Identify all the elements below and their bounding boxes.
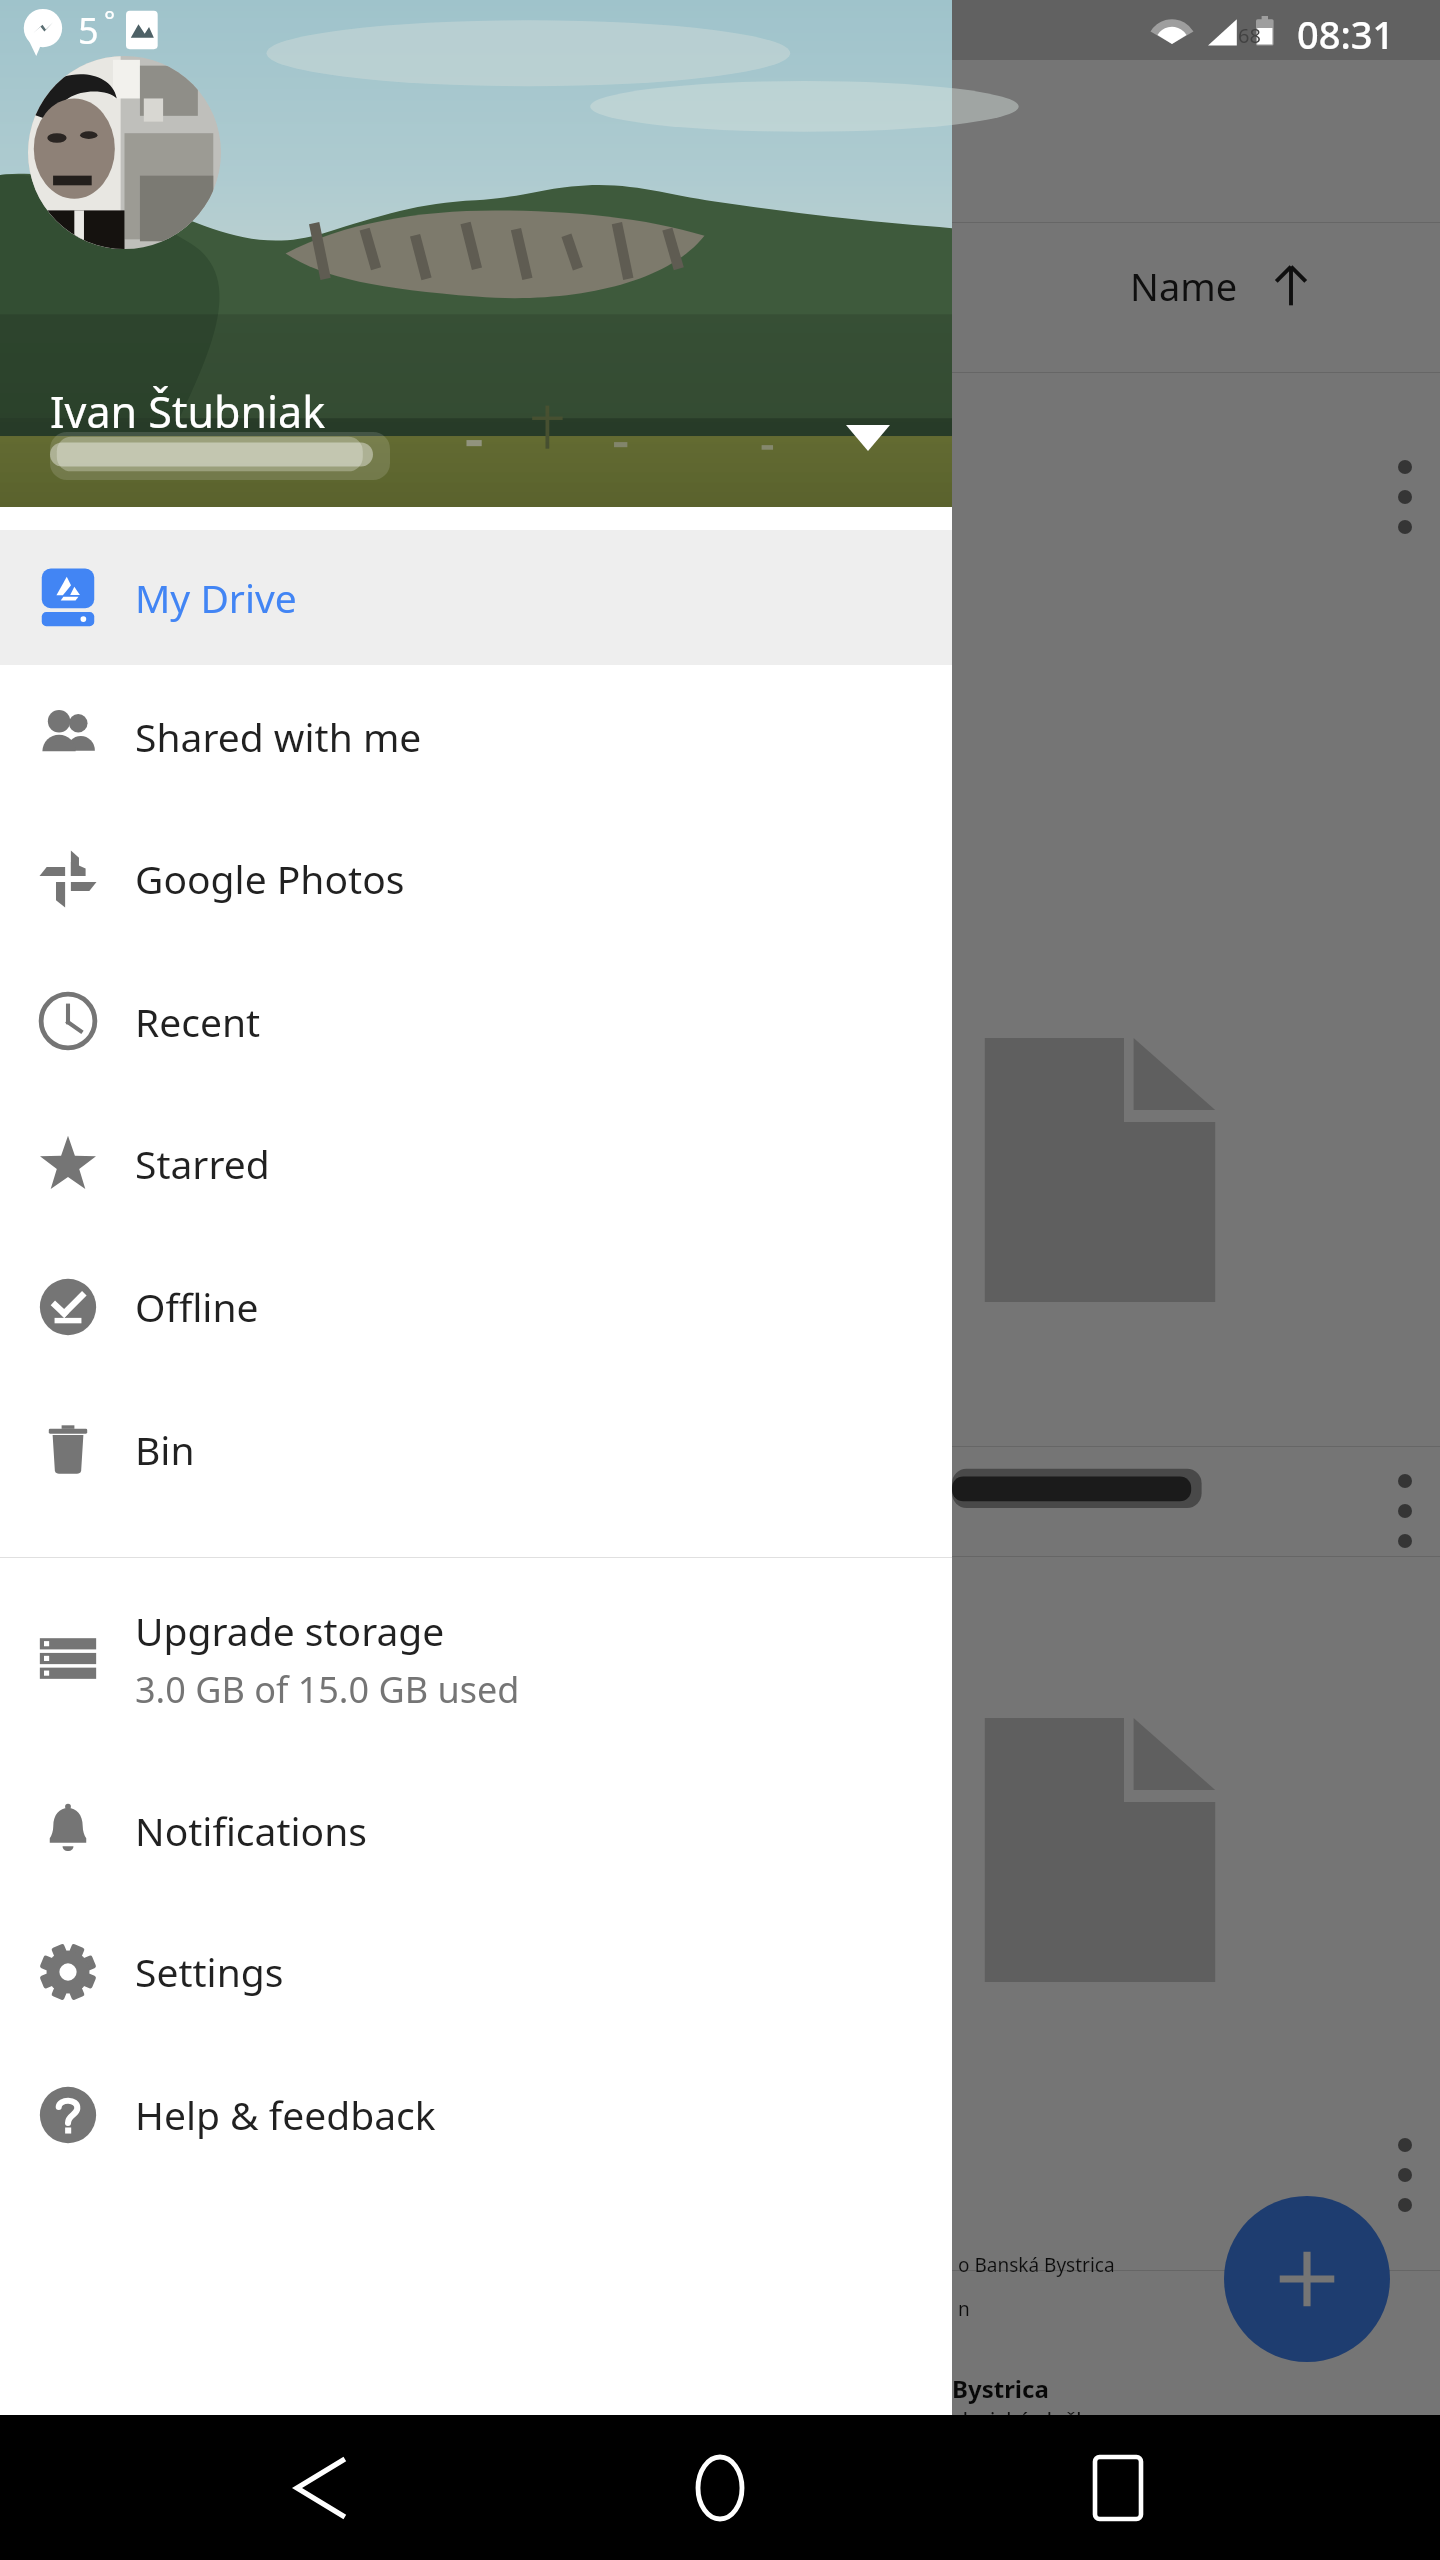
button[interactable]: Google Photos	[0, 807, 952, 950]
button[interactable]: Upgrade storage	[0, 1558, 952, 1760]
button[interactable]: Account photo	[0, 0, 952, 507]
staticText: Google Photos	[135, 852, 405, 905]
staticText: Name	[1130, 260, 1238, 312]
staticText: Settings	[135, 1945, 284, 1998]
button[interactable]: Show accounts	[820, 390, 916, 486]
staticText: °	[104, 2, 116, 37]
button[interactable]: More options	[1360, 2130, 1440, 2220]
button[interactable]: Back	[248, 2415, 398, 2560]
staticText: Bystrica	[952, 2372, 1049, 2405]
staticText: 5	[78, 6, 99, 55]
button[interactable]: Account photo	[28, 56, 221, 249]
button[interactable]: Notifications	[0, 1760, 952, 1900]
staticText: 3.0 GB of 15.0 GB used	[135, 1665, 520, 1714]
button[interactable]: Shared with me	[0, 665, 952, 807]
button[interactable]: Home	[645, 2415, 795, 2560]
staticText: 68	[1238, 22, 1261, 49]
staticText: My Drive	[135, 571, 297, 624]
button[interactable]: Create	[1224, 2196, 1390, 2362]
staticText: Upgrade storage	[135, 1604, 445, 1657]
button[interactable]: Starred	[0, 1092, 952, 1235]
staticText: Recent	[135, 995, 261, 1048]
staticText: Ivan Štubniak	[50, 382, 326, 441]
staticText: Offline	[135, 1280, 259, 1333]
button[interactable]: Help & feedback	[0, 2043, 952, 2186]
button[interactable]: Settings	[0, 1900, 952, 2043]
staticText: 08:31	[1297, 8, 1395, 60]
button[interactable]: More options	[1360, 452, 1440, 542]
button[interactable]: Bin	[0, 1378, 952, 1520]
button[interactable]: My Drive	[0, 530, 952, 665]
button[interactable]: Offline	[0, 1235, 952, 1378]
staticText: Bin	[135, 1423, 195, 1476]
button[interactable]: Name	[1130, 260, 1314, 312]
button[interactable]: More options	[1360, 1466, 1440, 1556]
staticText: Starred	[135, 1137, 270, 1190]
button[interactable]: Recent apps	[1043, 2415, 1193, 2560]
staticText: Shared with me	[135, 710, 422, 763]
staticText: n	[958, 2296, 970, 2322]
staticText: chnické služby	[952, 2404, 1101, 2434]
staticText: Notifications	[135, 1804, 367, 1857]
button[interactable]: Recent	[0, 950, 952, 1092]
staticText: o Banská Bystrica	[958, 2252, 1115, 2278]
staticText: Help & feedback	[135, 2088, 436, 2141]
